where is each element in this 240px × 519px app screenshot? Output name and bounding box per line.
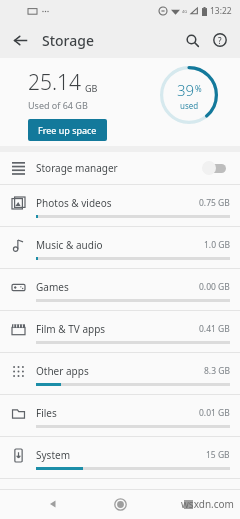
staticText: System <box>36 448 70 462</box>
button[interactable]: Help <box>206 26 234 54</box>
staticText: 4G <box>182 9 188 14</box>
staticText: 15 GB <box>206 449 230 461</box>
button[interactable]: Free up space <box>28 119 107 141</box>
button[interactable]: Files <box>0 395 240 437</box>
staticText: Files <box>36 406 57 420</box>
staticText: Photos & videos <box>36 196 112 210</box>
staticText: % <box>195 83 202 94</box>
staticText: 0.00 GB <box>199 281 230 293</box>
button[interactable]: Back <box>6 26 34 54</box>
staticText: 39 <box>177 80 195 100</box>
staticText: Storage <box>42 31 94 50</box>
staticText: Storage manager <box>36 161 118 175</box>
button[interactable]: Search <box>178 26 206 54</box>
button[interactable]: Storage manager <box>0 152 240 184</box>
staticText: 25.14 <box>28 68 82 97</box>
button[interactable]: Home <box>105 489 135 519</box>
button[interactable]: System <box>0 437 240 479</box>
staticText: used <box>180 100 199 111</box>
staticText: Film & TV apps <box>36 322 106 336</box>
staticText: 0.41 GB <box>199 323 230 335</box>
button[interactable]: Back <box>38 489 68 519</box>
button[interactable]: Music & audio <box>0 227 240 269</box>
staticText: 0.75 GB <box>199 197 230 209</box>
staticText: Used of 64 GB <box>28 99 88 111</box>
staticText: ? <box>218 35 222 46</box>
staticText: 8.3 GB <box>204 365 230 377</box>
staticText: wsxdn.com <box>181 497 234 511</box>
staticText: 13:22 <box>210 5 232 17</box>
staticText: 0.01 GB <box>199 407 230 419</box>
staticText: Games <box>36 280 69 294</box>
staticText: 1.0 GB <box>204 239 230 251</box>
staticText: Music & audio <box>36 238 103 252</box>
staticText: GB <box>85 82 98 94</box>
staticText: Other apps <box>36 364 89 378</box>
button[interactable]: Other apps <box>0 353 240 395</box>
button[interactable]: Film & TV apps <box>0 311 240 353</box>
staticText: Free up space <box>38 124 97 136</box>
button[interactable]: Photos & videos <box>0 185 240 227</box>
button[interactable]: Games <box>0 269 240 311</box>
button[interactable]: Recents <box>173 489 203 519</box>
